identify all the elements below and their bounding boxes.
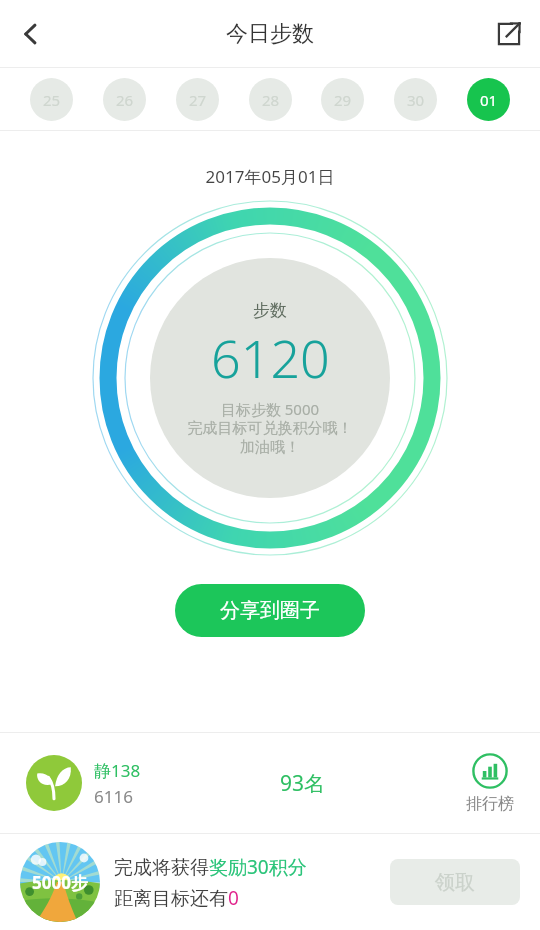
staticText: 27 xyxy=(189,90,207,110)
staticText: 完成目标可兑换积分哦！ xyxy=(155,419,385,438)
staticText: 距离目标还有0 xyxy=(114,885,239,911)
staticText: 完成将获得奖励30积分 xyxy=(114,854,307,880)
button[interactable]: Share xyxy=(478,3,540,65)
staticText: 领取 xyxy=(435,870,475,895)
staticText: 01 xyxy=(480,90,498,110)
staticText: 2017年05月01日 xyxy=(0,165,540,188)
staticText: 30 xyxy=(407,90,425,110)
button[interactable]: 27 xyxy=(176,78,219,121)
staticText: 目标步数 5000 xyxy=(155,399,385,419)
staticText: 今日步数 xyxy=(226,20,314,48)
button[interactable]: 01 xyxy=(467,78,510,121)
button[interactable]: 28 xyxy=(249,78,292,121)
staticText: 26 xyxy=(116,90,134,110)
staticText: 排行榜 xyxy=(466,794,514,814)
staticText: 6116 xyxy=(94,785,133,808)
button[interactable]: 分享到圈子 xyxy=(175,584,365,637)
button[interactable]: 25 xyxy=(30,78,73,121)
staticText: 步数 xyxy=(253,300,287,321)
staticText: 分享到圈子 xyxy=(220,598,320,623)
button[interactable]: Back xyxy=(0,3,62,65)
staticText: 25 xyxy=(43,90,61,110)
staticText: 5000步 xyxy=(32,871,88,894)
staticText: 静138 xyxy=(94,759,141,782)
button[interactable]: 30 xyxy=(394,78,437,121)
staticText: 28 xyxy=(262,90,280,110)
staticText: 29 xyxy=(334,90,352,110)
button[interactable]: 29 xyxy=(321,78,364,121)
button[interactable]: 93名 xyxy=(280,769,326,798)
staticText: 6120 xyxy=(211,322,330,393)
button[interactable]: 26 xyxy=(103,78,146,121)
staticText: 加油哦！ xyxy=(155,438,385,457)
button[interactable]: 排行榜 xyxy=(466,753,514,814)
button[interactable]: 静138 xyxy=(26,755,141,811)
button[interactable]: 领取 xyxy=(390,859,520,905)
